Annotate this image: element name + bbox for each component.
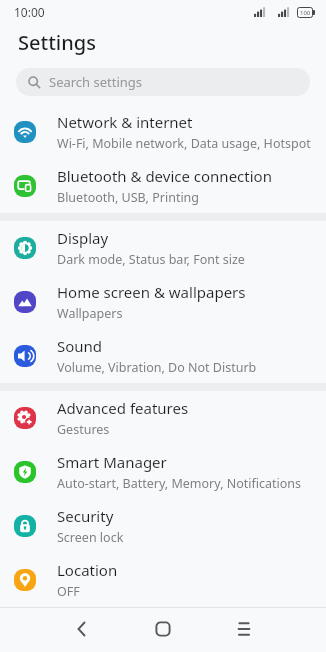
staticText: Security <box>57 506 114 526</box>
staticText: Gestures <box>57 421 110 438</box>
staticText: Volume, Vibration, Do Not Disturb <box>57 359 257 376</box>
staticText: Home screen & wallpapers <box>57 282 246 302</box>
staticText: Network & internet <box>57 112 193 132</box>
button[interactable]: Advanced features <box>0 391 326 445</box>
staticText: Sound <box>57 336 103 356</box>
staticText: Wallpapers <box>57 305 123 322</box>
staticText: Screen lock <box>57 529 124 546</box>
staticText: 10:00 <box>14 4 45 20</box>
staticText: Display <box>57 228 109 248</box>
staticText: 100 <box>300 9 311 17</box>
staticText: Bluetooth & device connection <box>57 166 272 186</box>
button[interactable]: Location <box>0 553 326 607</box>
staticText: Smart Manager <box>57 452 167 472</box>
staticText: Dark mode, Status bar, Font size <box>57 251 245 268</box>
button[interactable]: Security <box>0 499 326 553</box>
staticText: Advanced features <box>57 398 189 418</box>
staticText: OFF <box>57 583 80 600</box>
button[interactable]: Sound <box>0 329 326 383</box>
staticText: Wi-Fi, Mobile network, Data usage, Hotsp… <box>57 135 311 152</box>
button[interactable]: Home screen & wallpapers <box>0 275 326 329</box>
button[interactable]: Search settings <box>16 68 310 96</box>
button[interactable] <box>216 608 272 650</box>
staticText: Bluetooth, USB, Printing <box>57 189 200 206</box>
button[interactable] <box>54 608 110 650</box>
staticText: Auto-start, Battery, Memory, Notificatio… <box>57 475 302 492</box>
button[interactable]: Bluetooth & device connection <box>0 159 326 213</box>
staticText: Location <box>57 560 118 580</box>
staticText: Search settings <box>49 73 143 91</box>
staticText: Settings <box>18 29 96 56</box>
button[interactable]: Display <box>0 221 326 275</box>
button[interactable] <box>135 608 191 650</box>
button[interactable]: Network & internet <box>0 105 326 159</box>
button[interactable]: Smart Manager <box>0 445 326 499</box>
